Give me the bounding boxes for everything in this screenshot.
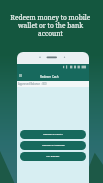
button[interactable]: Menu: [18, 73, 22, 77]
staticText: Redeem money to mobile wallet or to the …: [0, 13, 102, 38]
button[interactable]: UPI Transfer: [20, 152, 86, 161]
staticText: Transfer to PayTM: [43, 133, 63, 136]
staticText: Approved Balance : 300: [18, 82, 47, 86]
button[interactable]: Transfer to Mobikwik: [20, 141, 86, 150]
staticText: UPI Transfer: [46, 155, 60, 158]
button[interactable]: Transfer to PayTM: [20, 130, 86, 139]
staticText: Redeem Cash: [40, 75, 59, 79]
staticText: Transfer to Mobikwik: [42, 144, 65, 147]
